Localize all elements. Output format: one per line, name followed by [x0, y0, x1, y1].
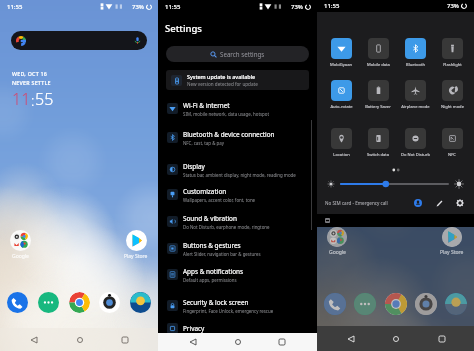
button[interactable]: Home	[68, 328, 91, 351]
button[interactable]: Chrome	[385, 293, 407, 315]
button[interactable]: Back	[22, 328, 45, 351]
staticText: Display	[183, 162, 205, 171]
button[interactable]: Play Store	[435, 227, 469, 256]
staticText: 11:55	[7, 3, 23, 11]
staticText: 11:55	[324, 2, 340, 10]
staticText: NFC	[448, 152, 456, 158]
button[interactable]: Settings	[455, 198, 465, 208]
staticText: No SIM card - Emergency call	[325, 200, 388, 206]
staticText: Buttons & gestures	[183, 241, 241, 250]
button[interactable]: Edit	[434, 198, 444, 208]
button[interactable]: Apps & notifications	[158, 265, 317, 284]
staticText: WED, OCT 16	[12, 70, 48, 77]
staticText: Google	[329, 249, 346, 256]
button[interactable]	[442, 128, 463, 149]
button[interactable]: Sound & vibration	[158, 212, 317, 231]
button[interactable]	[368, 80, 389, 101]
button[interactable]	[331, 128, 352, 149]
button[interactable]: Google	[3, 230, 37, 260]
staticText: Night mode	[441, 104, 464, 110]
button[interactable]: Google	[320, 227, 354, 256]
button[interactable]: Wi-Fi & internet	[158, 99, 317, 118]
staticText: Bluetooth	[406, 62, 425, 68]
staticText: System update is available	[187, 73, 256, 80]
staticText: Default apps, permissions	[183, 277, 237, 283]
button[interactable]	[368, 128, 389, 149]
staticText: New version detected for update	[187, 81, 258, 87]
button[interactable]: Play Store	[119, 230, 153, 260]
button[interactable]: Privacy	[158, 321, 317, 335]
button[interactable]: Buttons & gestures	[158, 239, 317, 258]
button[interactable]: Recents	[429, 326, 454, 351]
button[interactable]: Display	[158, 160, 317, 179]
staticText: Alert Slider, navigation bar & gestures	[183, 251, 261, 257]
button[interactable]: Phone	[7, 292, 28, 313]
button[interactable]	[405, 38, 426, 59]
button[interactable]	[331, 80, 352, 101]
staticText: Search settings	[220, 50, 265, 58]
button[interactable]	[442, 38, 463, 59]
button[interactable]: Google search	[11, 31, 147, 50]
button[interactable]	[405, 128, 426, 149]
staticText: Wallpapers, accent color, font, tone	[183, 197, 256, 203]
button[interactable]: Messages	[38, 292, 59, 313]
staticText: MobiGyaan WiFi	[326, 62, 356, 68]
button[interactable]: Home	[229, 333, 247, 351]
button[interactable]: Camera	[99, 292, 120, 313]
staticText: Google	[12, 253, 29, 260]
staticText: 73%	[447, 2, 459, 10]
button[interactable]: Gallery	[445, 293, 467, 315]
staticText: NEVER SETTLE	[12, 79, 51, 86]
button[interactable]: Back	[184, 333, 202, 351]
button[interactable]: Back	[338, 326, 363, 351]
button[interactable]: Gallery	[130, 292, 151, 313]
staticText: Do Not Disturb	[401, 152, 430, 158]
staticText: Auto-rotate	[330, 104, 353, 110]
staticText: Settings	[165, 22, 202, 35]
staticText: Airplane mode	[401, 104, 430, 110]
staticText: Sound & vibration	[183, 214, 237, 223]
button[interactable]: Camera	[415, 293, 437, 315]
staticText: Play Store	[440, 249, 464, 256]
staticText: 55	[35, 88, 54, 110]
button[interactable]: Recents	[273, 333, 291, 351]
button[interactable]	[442, 80, 463, 101]
button[interactable]	[331, 38, 352, 59]
button[interactable]: Bluetooth & device connection	[158, 128, 317, 147]
button[interactable]: Search settings	[166, 46, 309, 62]
staticText: NFC, cast, tap & pay	[183, 140, 224, 146]
staticText: Wi-Fi & internet	[183, 101, 230, 110]
staticText: Bluetooth & device connection	[183, 130, 275, 139]
staticText: 11:55	[165, 3, 181, 11]
button[interactable]: User	[413, 198, 423, 208]
staticText: 73%	[132, 3, 144, 11]
button[interactable]: Recents	[113, 328, 136, 351]
staticText: Switch data card	[363, 152, 393, 158]
button[interactable]: Home	[383, 326, 408, 351]
staticText: Apps & notifications	[183, 267, 244, 276]
button[interactable]: Chrome	[69, 292, 90, 313]
staticText: 11	[12, 88, 31, 110]
staticText: Privacy	[183, 324, 205, 333]
button[interactable]: Phone	[324, 293, 346, 315]
staticText: Battery Saver	[365, 104, 391, 110]
button[interactable]: Messages	[354, 293, 376, 315]
button[interactable]	[405, 80, 426, 101]
staticText: 73%	[291, 3, 303, 11]
staticText: :	[31, 91, 35, 110]
button[interactable]: Customization	[158, 185, 317, 204]
staticText: Security & lock screen	[183, 298, 249, 307]
button[interactable]: Security & lock screen	[158, 296, 317, 315]
button[interactable]: System update is available	[166, 70, 309, 90]
staticText: Mobile data	[367, 62, 390, 68]
staticText: Do Not Disturb, earphone mode, ringtone	[183, 224, 270, 230]
staticText: Play Store	[124, 253, 148, 260]
staticText: SIM, mobile network, data usage, hotspot	[183, 111, 270, 117]
staticText: Customization	[183, 187, 227, 196]
button[interactable]	[368, 38, 389, 59]
staticText: Status bar, ambient display, night mode,…	[183, 172, 296, 178]
staticText: Location	[333, 152, 350, 158]
staticText: Flashlight	[443, 62, 462, 68]
staticText: Fingerprint, Face Unlock, emergency resc…	[183, 308, 274, 314]
